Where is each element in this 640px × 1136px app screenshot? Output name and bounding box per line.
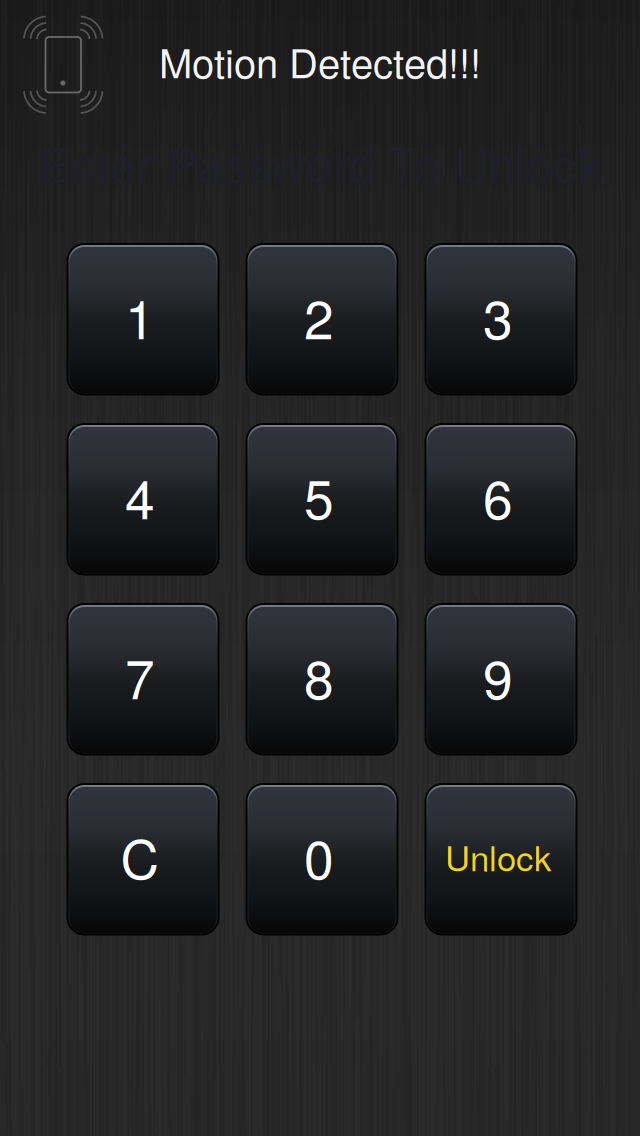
button[interactable]: 8 <box>245 603 398 755</box>
button[interactable]: 4 <box>66 423 219 575</box>
button[interactable]: 1 <box>66 243 219 395</box>
staticText: C <box>120 818 159 894</box>
button[interactable]: Unlock <box>424 783 577 935</box>
button[interactable]: 2 <box>245 243 398 395</box>
staticText: Unlock <box>445 831 551 881</box>
staticText: 6 <box>483 458 513 534</box>
staticText: 3 <box>483 278 513 354</box>
staticText: 0 <box>304 818 334 894</box>
button[interactable]: 5 <box>245 423 398 575</box>
staticText: Motion Detected!!! <box>159 32 481 90</box>
button[interactable]: C <box>66 783 219 935</box>
button[interactable]: 0 <box>245 783 398 935</box>
staticText: 8 <box>304 638 334 714</box>
staticText: 4 <box>125 458 155 534</box>
staticText: 7 <box>125 638 155 714</box>
button[interactable]: 7 <box>66 603 219 755</box>
staticText: 1 <box>125 278 155 354</box>
button[interactable]: 3 <box>424 243 577 395</box>
staticText: Enter Password To Unlock <box>38 128 601 196</box>
button[interactable]: 9 <box>424 603 577 755</box>
staticText: 2 <box>304 278 334 354</box>
button[interactable]: 6 <box>424 423 577 575</box>
staticText: 9 <box>483 638 513 714</box>
staticText: 5 <box>304 458 334 534</box>
